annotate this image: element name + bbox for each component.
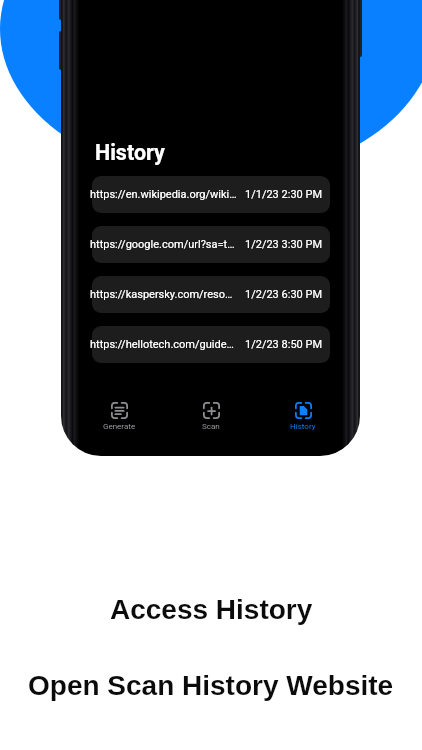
staticText: Access History xyxy=(110,594,313,625)
button[interactable]: https://google.com/url?sa=t&rct=j&q xyxy=(92,226,330,263)
staticText: https://google.com/url?sa=t&rct=j&q xyxy=(90,238,238,251)
button[interactable]: Scan xyxy=(165,402,257,431)
staticText: Open Scan History Website xyxy=(28,670,394,701)
staticText: History xyxy=(95,140,165,165)
staticText: https://kaspersky.com/resource/abc xyxy=(90,288,238,301)
staticText: History xyxy=(290,422,316,431)
button[interactable]: History xyxy=(257,402,342,431)
staticText: https://en.wikipedia.org/wikipedia/s xyxy=(90,188,238,201)
staticText: 1/1/23 2:30 PM xyxy=(245,188,323,201)
staticText: 1/2/23 8:50 PM xyxy=(245,338,323,351)
staticText: 1/2/23 3:30 PM xyxy=(245,238,323,251)
staticText: https://hellotech.com/guide/howto/x xyxy=(90,338,238,351)
button[interactable]: https://en.wikipedia.org/wikipedia/s xyxy=(92,176,330,213)
button[interactable]: Generate xyxy=(79,402,165,431)
button[interactable]: https://kaspersky.com/resource/abc xyxy=(92,276,330,313)
staticText: Scan xyxy=(202,422,220,431)
staticText: Generate xyxy=(103,422,136,431)
staticText: 1/2/23 6:30 PM xyxy=(245,288,323,301)
button[interactable]: https://hellotech.com/guide/howto/x xyxy=(92,326,330,363)
